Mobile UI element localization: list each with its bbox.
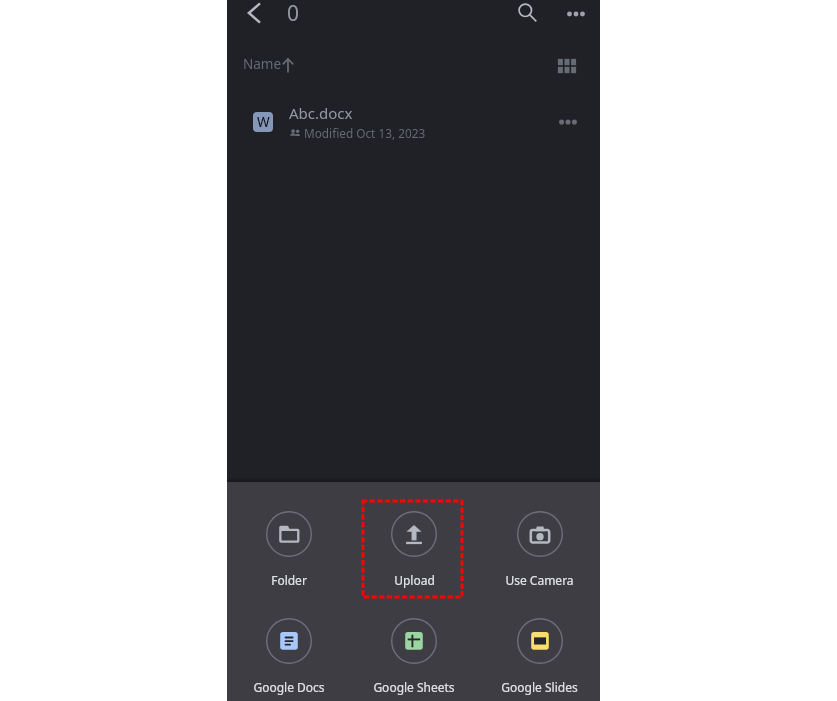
button[interactable]: Use Camera <box>484 502 594 597</box>
staticText: Use Camera <box>505 572 574 588</box>
button[interactable]: Back <box>235 0 275 26</box>
button[interactable]: Folder <box>234 502 344 597</box>
staticText: Name <box>243 55 282 73</box>
button[interactable]: W <box>227 94 600 150</box>
staticText: Google Slides <box>501 679 578 695</box>
staticText: Modified Oct 13, 2023 <box>304 125 426 141</box>
button[interactable]: Google Docs <box>234 609 344 701</box>
staticText: Upload <box>394 572 435 588</box>
staticText: 0 <box>287 0 300 26</box>
staticText: Google Sheets <box>373 679 455 695</box>
staticText: Google Docs <box>253 679 325 695</box>
button[interactable]: More options for Abc.docx <box>548 102 588 142</box>
button[interactable]: More options <box>556 0 596 27</box>
button[interactable]: Upload <box>359 502 469 597</box>
button[interactable]: Name <box>236 50 301 78</box>
staticText: Folder <box>271 572 307 588</box>
button[interactable]: Grid view <box>550 49 584 83</box>
staticText: W <box>257 113 270 131</box>
button[interactable]: Search <box>508 0 548 26</box>
button[interactable]: Google Sheets <box>359 609 469 701</box>
staticText: Abc.docx <box>289 103 353 123</box>
button[interactable]: Google Slides <box>484 609 594 701</box>
